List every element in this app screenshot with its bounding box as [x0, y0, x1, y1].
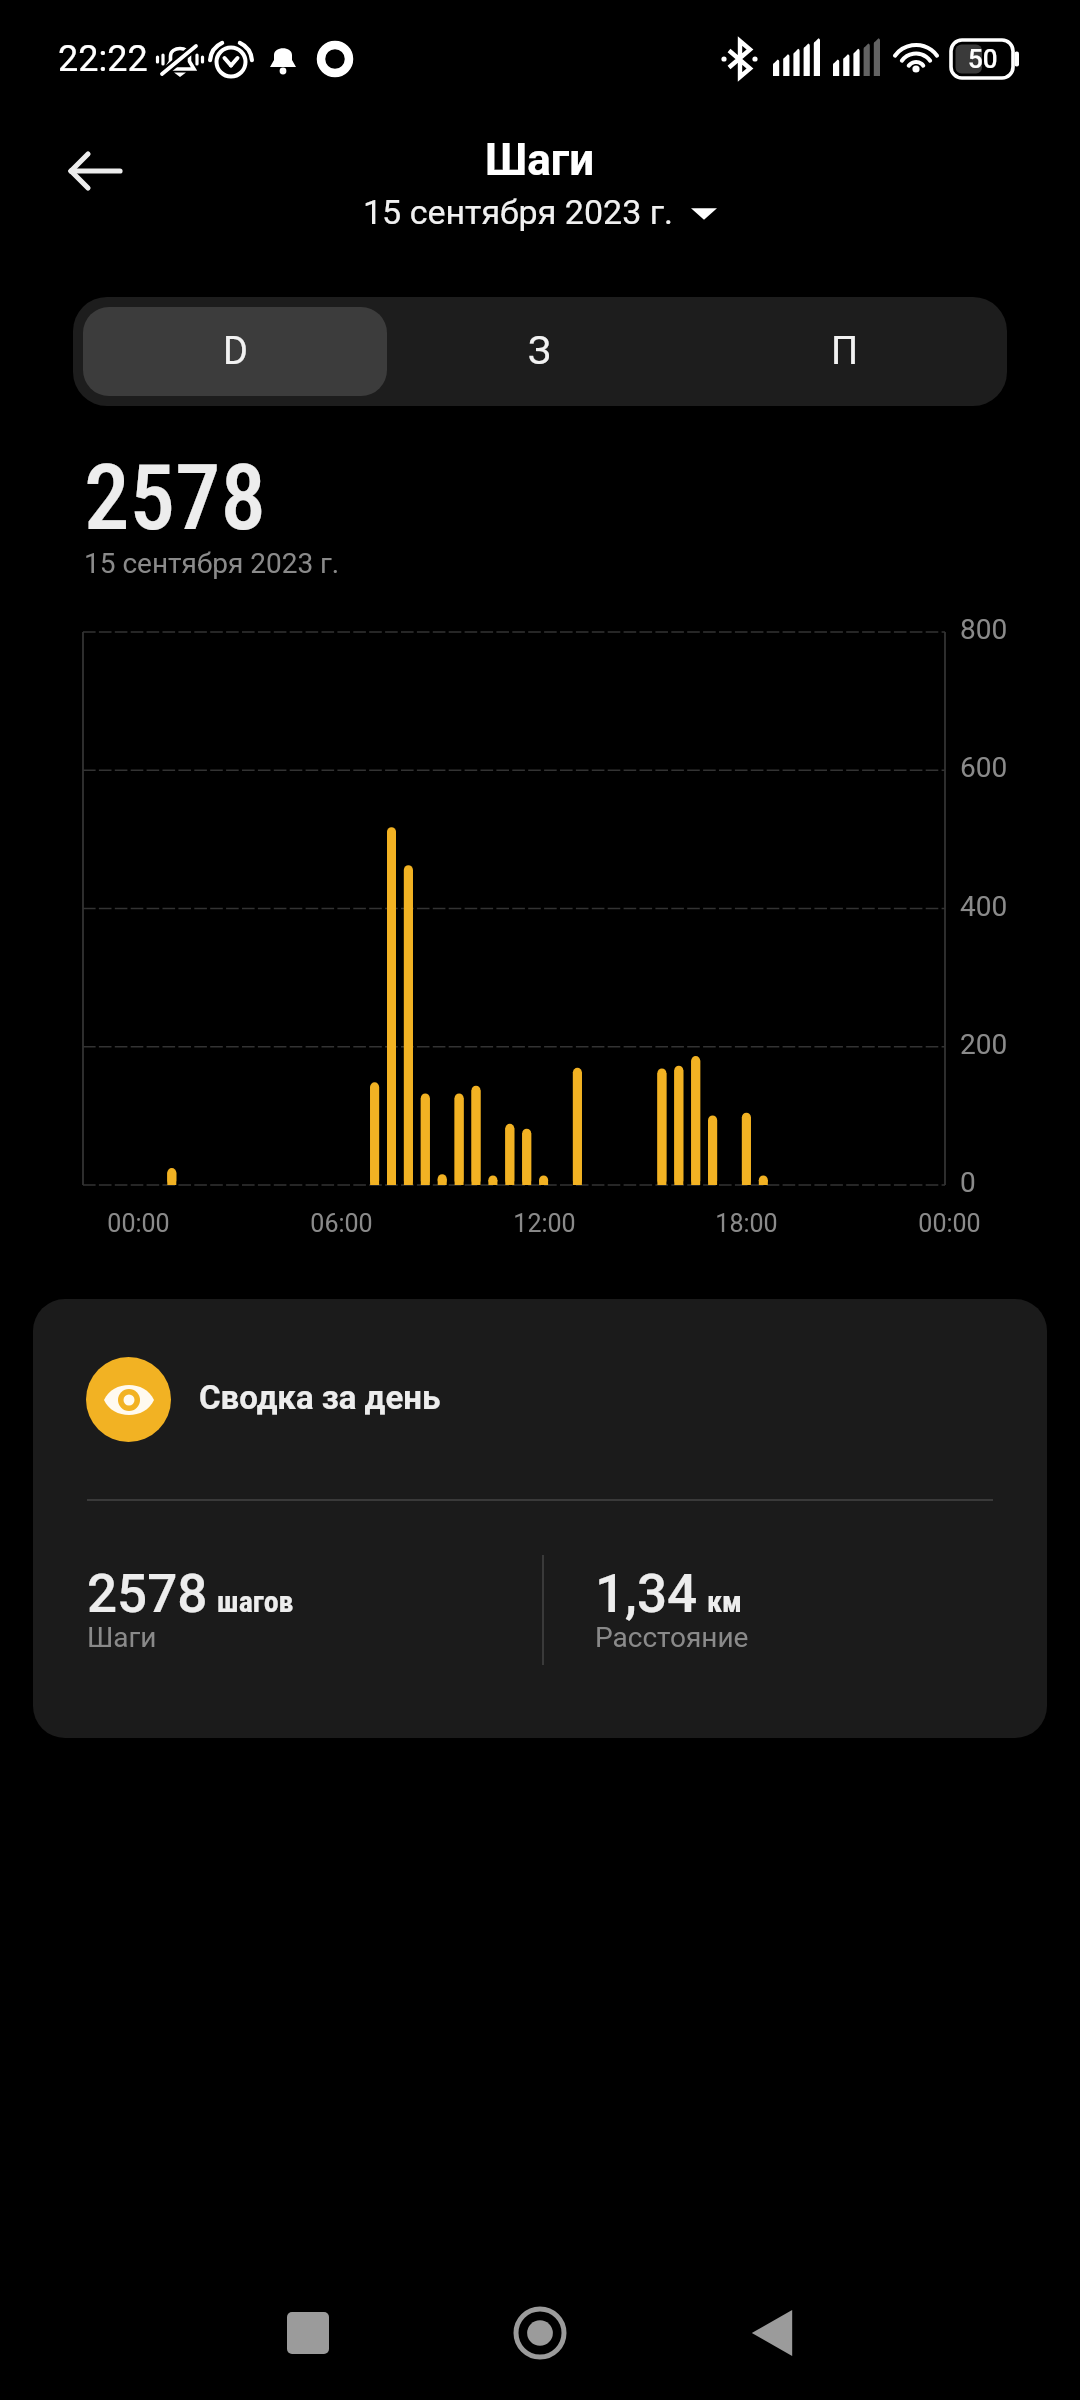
button[interactable]: Home: [424, 2268, 656, 2398]
staticText: Сводка за день: [199, 1378, 441, 1417]
button[interactable]: Back: [656, 2268, 888, 2398]
button[interactable]: Back: [41, 116, 151, 226]
button[interactable]: 15 сентября 2023 г.: [357, 190, 723, 234]
staticText: Шаги: [485, 134, 595, 186]
staticText: 00:00: [107, 1209, 170, 1238]
staticText: км: [707, 1584, 743, 1619]
staticText: 600: [960, 751, 1008, 784]
staticText: 0: [960, 1166, 976, 1199]
staticText: З: [528, 329, 551, 374]
staticText: D: [223, 329, 248, 374]
staticText: 12:00: [513, 1209, 576, 1238]
staticText: 2578: [84, 445, 266, 552]
button[interactable]: Recents: [192, 2268, 424, 2398]
staticText: 15 сентября 2023 г.: [84, 547, 340, 580]
staticText: 15 сентября 2023 г.: [363, 192, 673, 232]
staticText: 50: [968, 44, 998, 74]
staticText: 22:22: [58, 38, 148, 80]
staticText: 800: [960, 613, 1008, 646]
button[interactable]: З: [387, 307, 692, 396]
staticText: 2578: [87, 1563, 208, 1625]
staticText: 06:00: [310, 1209, 373, 1238]
button[interactable]: Сводка за день: [33, 1299, 1047, 1738]
staticText: 18:00: [715, 1209, 778, 1238]
staticText: Расстояние: [595, 1621, 749, 1654]
staticText: П: [831, 329, 859, 374]
staticText: 400: [960, 890, 1008, 923]
button[interactable]: П: [692, 307, 997, 396]
staticText: 200: [960, 1028, 1008, 1061]
staticText: Шаги: [87, 1621, 157, 1654]
staticText: 00:00: [918, 1209, 981, 1238]
staticText: шагов: [217, 1584, 294, 1619]
button[interactable]: D: [83, 307, 387, 396]
staticText: 1,34: [595, 1563, 698, 1625]
